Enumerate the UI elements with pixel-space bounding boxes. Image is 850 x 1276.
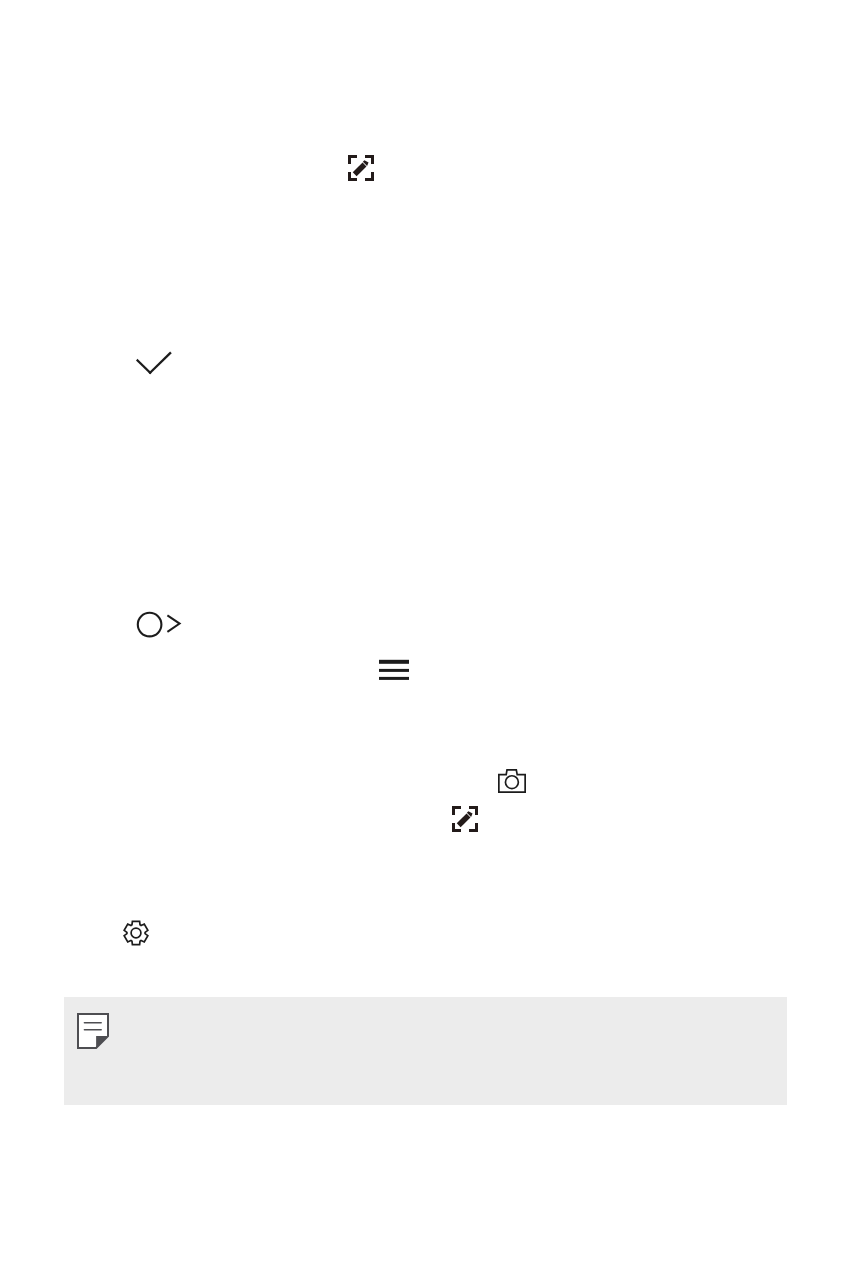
button[interactable]: Camera (498, 769, 526, 793)
button[interactable]: Next (134, 609, 184, 641)
button[interactable]: Edit image (452, 806, 478, 832)
button[interactable]: Menu (379, 656, 409, 683)
button[interactable]: Settings (123, 920, 149, 946)
button[interactable] (64, 997, 787, 1105)
button[interactable]: Done (134, 350, 174, 378)
button[interactable]: Edit image (348, 155, 374, 181)
